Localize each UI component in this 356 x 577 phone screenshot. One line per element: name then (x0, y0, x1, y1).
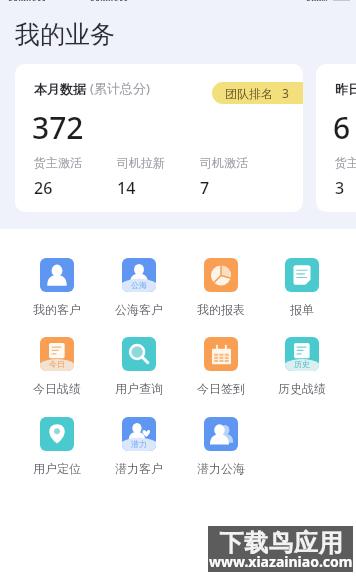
staticText: (累计总分) (90, 79, 150, 97)
staticText: 我的报表 (197, 302, 245, 317)
staticText: 今日 (49, 359, 65, 369)
staticText: 历史 (294, 359, 310, 369)
button[interactable]: 用户定位 (16, 417, 98, 476)
staticText: 历史战绩 (278, 381, 326, 396)
button[interactable]: 我的客户 (16, 258, 98, 317)
staticText: 报单 (290, 302, 314, 317)
staticText: 372 (32, 107, 84, 148)
staticText: 昨日数据 (335, 81, 356, 97)
button[interactable]: 今日 (16, 337, 98, 396)
staticText: 潜力 (131, 439, 147, 449)
staticText: 本月数据 (34, 81, 86, 97)
button[interactable]: 本月数据 (15, 64, 303, 212)
staticText: 团队排名 (225, 86, 273, 101)
staticText: 14 (117, 177, 136, 199)
staticText: 我的客户 (33, 302, 81, 317)
button[interactable]: 公海 (98, 258, 180, 317)
button[interactable]: 用户查询 (98, 337, 180, 396)
staticText: 11:08AM (90, 0, 128, 1)
staticText: 潜力客户 (115, 461, 163, 476)
staticText: 7 (200, 177, 210, 199)
staticText: 公海 (131, 280, 147, 290)
button[interactable]: 团队排名 (212, 82, 303, 104)
button[interactable]: 历史 (262, 337, 342, 396)
staticText: 司机激活 (200, 155, 248, 170)
staticText: 3 (282, 85, 289, 101)
button[interactable]: 我的报表 (180, 258, 262, 317)
staticText: 货主激活 (335, 155, 356, 170)
staticText: 司机拉新 (117, 155, 165, 170)
staticText: 用户定位 (33, 461, 81, 476)
staticText: 潜力公海 (197, 461, 245, 476)
staticText: 公海客户 (115, 302, 163, 317)
staticText: 26 (34, 177, 53, 199)
button[interactable]: 报单 (262, 258, 342, 317)
staticText: 下载鸟应用 (219, 528, 343, 558)
button[interactable]: 潜力公海 (180, 417, 262, 476)
staticText: 货主激活 (34, 155, 82, 170)
staticText: 今日签到 (197, 381, 245, 396)
staticText: 6 (333, 107, 351, 148)
staticText: 100% (306, 0, 330, 1)
button[interactable]: 昨日数据 (316, 64, 356, 212)
staticText: 3 (335, 177, 345, 199)
staticText: 用户查询 (115, 381, 163, 396)
button[interactable]: 潜力 (98, 417, 180, 476)
staticText: www.xiazainiao.com (209, 552, 353, 571)
staticText: 11:08AM (8, 0, 46, 1)
button[interactable]: 今日签到 (180, 337, 262, 396)
staticText: 我的业务 (15, 19, 115, 50)
staticText: 今日战绩 (33, 381, 81, 396)
